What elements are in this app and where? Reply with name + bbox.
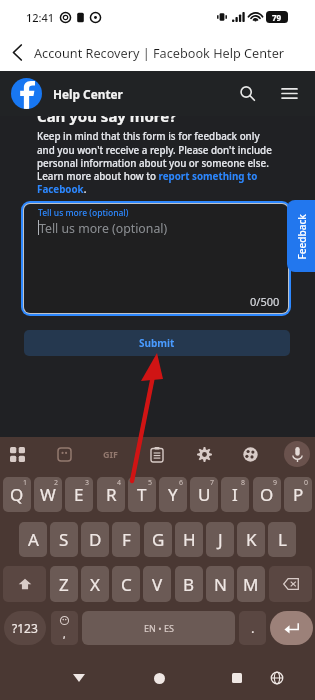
button[interactable]: A	[19, 522, 47, 557]
button[interactable]: Enter	[270, 611, 313, 645]
staticText: F	[122, 528, 131, 551]
staticText: 3	[85, 478, 90, 488]
staticText: 5	[148, 478, 153, 488]
staticText: 79	[272, 12, 282, 23]
button[interactable]: Z	[50, 566, 78, 602]
button[interactable]: Home	[141, 660, 177, 696]
button[interactable]: R	[97, 477, 125, 512]
button[interactable]: Keyboard tool	[235, 439, 265, 469]
button[interactable]: EN • ES	[82, 611, 235, 645]
button[interactable]: G	[144, 522, 172, 557]
staticText: 9	[273, 478, 278, 488]
button[interactable]: Keyboard tool	[2, 439, 32, 469]
staticText: D	[89, 528, 102, 551]
staticText: Feedback	[294, 213, 308, 259]
staticText: V	[152, 573, 163, 596]
staticText: I	[232, 483, 238, 506]
button[interactable]: N	[206, 566, 234, 602]
staticText: W	[40, 483, 56, 506]
staticText: Tell us more (optional)	[39, 220, 168, 237]
button[interactable]: X	[81, 566, 109, 602]
staticText: A	[28, 528, 39, 551]
staticText: 12:41	[26, 10, 55, 25]
staticText: L	[278, 528, 287, 551]
button[interactable]: B	[175, 566, 203, 602]
button[interactable]: H	[175, 522, 203, 557]
staticText: Q	[10, 483, 24, 506]
button[interactable]: Shift	[3, 566, 46, 602]
button[interactable]: Y	[159, 477, 187, 512]
staticText: 4	[117, 478, 122, 488]
staticText: X	[90, 573, 100, 596]
button[interactable]: Search	[231, 77, 264, 110]
button[interactable]: S	[50, 522, 78, 557]
button[interactable]: Feedback	[287, 200, 315, 272]
button[interactable]: Change language	[259, 660, 295, 696]
staticText: K	[246, 528, 257, 551]
button[interactable]: W	[34, 477, 62, 512]
staticText: GIF	[103, 448, 118, 460]
staticText: C	[121, 573, 132, 596]
staticText: E	[74, 483, 84, 506]
button[interactable]: I	[221, 477, 249, 512]
button[interactable]: Menu	[273, 77, 306, 110]
staticText: ,	[63, 627, 66, 641]
button[interactable]: Back	[0, 34, 34, 71]
staticText: Y	[168, 483, 178, 506]
staticText: J	[218, 528, 223, 551]
staticText: 7	[210, 478, 215, 488]
staticText: Help Center	[53, 86, 123, 102]
staticText: R	[106, 483, 117, 506]
staticText: M	[243, 573, 259, 596]
staticText: Keep in mind that this form is for feedb…	[37, 130, 277, 195]
staticText: EN • ES	[144, 622, 174, 634]
staticText: O	[260, 483, 274, 506]
button[interactable]: Keyboard tool	[189, 439, 219, 469]
button[interactable]: E	[65, 477, 93, 512]
staticText: 8	[241, 478, 246, 488]
button[interactable]: Tell us more (optional)	[24, 204, 288, 313]
staticText: B	[183, 573, 195, 596]
staticText: N	[214, 573, 227, 596]
button[interactable]: Backspace	[269, 566, 312, 602]
staticText: 2	[54, 478, 59, 488]
staticText: 6	[179, 478, 184, 488]
button[interactable]: J	[206, 522, 234, 557]
staticText: ?123	[12, 620, 38, 636]
button[interactable]: O	[253, 477, 281, 512]
button[interactable]: Back	[61, 660, 97, 696]
button[interactable]: Period	[239, 611, 266, 645]
staticText: Tell us more (optional)	[38, 207, 129, 219]
staticText: P	[293, 483, 304, 506]
button[interactable]: U	[190, 477, 218, 512]
staticText: Submit	[139, 336, 175, 350]
button[interactable]: L	[268, 522, 296, 557]
button[interactable]: Emoji and comma	[51, 611, 78, 645]
button[interactable]: V	[143, 566, 171, 602]
button[interactable]: Keyboard tool	[49, 439, 79, 469]
staticText: G	[152, 528, 165, 551]
button[interactable]: Recent apps	[219, 660, 255, 696]
staticText: Account Recovery | Facebook Help Center	[34, 44, 285, 61]
staticText: S	[59, 528, 69, 551]
staticText: 1	[23, 478, 28, 488]
button[interactable]: Submit	[24, 330, 290, 356]
staticText: Z	[59, 573, 69, 596]
staticText: Can you say more?	[37, 106, 177, 126]
button[interactable]: ?123	[4, 611, 46, 645]
button[interactable]: Keyboard tool	[142, 439, 172, 469]
staticText: T	[137, 483, 147, 506]
button[interactable]: Keyboard tool	[282, 439, 312, 469]
button[interactable]: K	[237, 522, 265, 557]
button[interactable]: F	[112, 522, 140, 557]
button[interactable]: D	[81, 522, 109, 557]
button[interactable]: T	[128, 477, 156, 512]
staticText: H	[183, 528, 196, 551]
staticText: 0	[304, 478, 309, 488]
button[interactable]: M	[237, 566, 265, 602]
button[interactable]: Q	[3, 477, 31, 512]
button[interactable]: C	[112, 566, 140, 602]
button[interactable]: Keyboard tool	[95, 439, 125, 469]
button[interactable]: P	[284, 477, 312, 512]
staticText: 0/500	[250, 294, 280, 309]
